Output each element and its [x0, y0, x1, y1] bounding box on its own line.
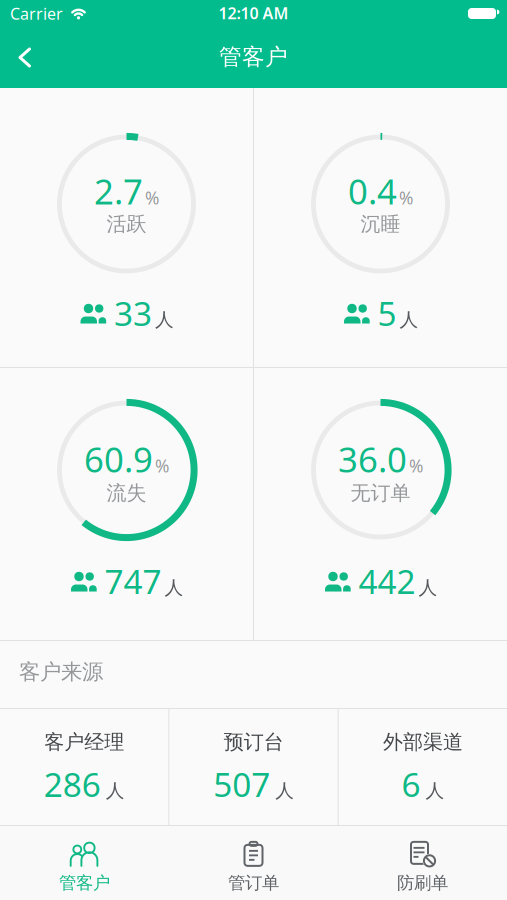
staticText: 5	[377, 291, 396, 335]
staticText: 管客户	[219, 43, 288, 71]
staticText: 沉睡	[360, 212, 400, 236]
staticText: 人	[275, 779, 294, 802]
staticText: %	[409, 454, 423, 477]
staticText: Carrier	[10, 3, 63, 24]
staticText: %	[155, 454, 169, 477]
staticText: 286	[44, 762, 101, 806]
staticText: 客户经理	[44, 730, 124, 754]
staticText: 507	[213, 762, 270, 806]
staticText: 12:10 AM	[218, 2, 288, 24]
staticText: 人	[106, 779, 125, 802]
staticText: %	[399, 186, 413, 209]
button[interactable]: 管客户	[0, 834, 169, 900]
staticText: 36.0	[338, 436, 407, 482]
staticText: 客户来源	[19, 659, 103, 685]
staticText: 6	[401, 762, 420, 806]
staticText: 流失	[106, 481, 146, 505]
staticText: 活跃	[106, 212, 146, 236]
staticText: 人	[399, 308, 418, 331]
staticText: 人	[164, 576, 183, 599]
staticText: 2.7	[94, 168, 143, 214]
staticText: 人	[155, 308, 174, 331]
staticText: 外部渠道	[383, 730, 463, 754]
staticText: 442	[358, 559, 415, 603]
staticText: 33	[114, 291, 152, 335]
button[interactable]: Back	[0, 28, 46, 86]
staticText: 0.4	[348, 168, 397, 214]
staticText: 防刷单	[397, 872, 448, 894]
staticText: 747	[104, 559, 161, 603]
staticText: 管客户	[59, 872, 110, 894]
button[interactable]: 管订单	[169, 834, 338, 900]
staticText: %	[145, 186, 159, 209]
staticText: 无订单	[350, 481, 410, 505]
button[interactable]: 防刷单	[338, 834, 507, 900]
staticText: 管订单	[228, 872, 279, 894]
staticText: 人	[418, 576, 437, 599]
staticText: 60.9	[84, 436, 153, 482]
staticText: 预订台	[224, 730, 284, 754]
staticText: 人	[425, 779, 444, 802]
